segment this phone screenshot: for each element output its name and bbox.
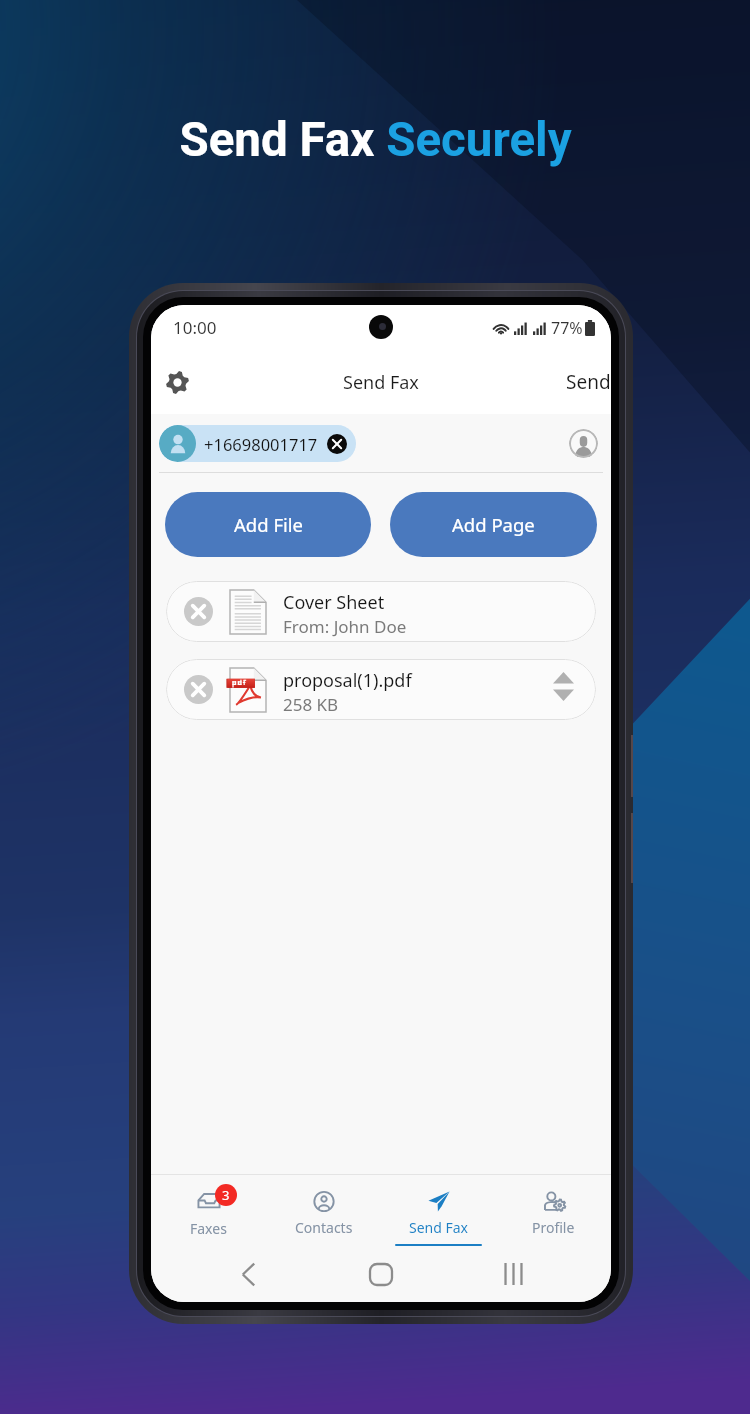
button[interactable]: Profile (496, 1175, 611, 1246)
staticText: 77% (551, 317, 583, 339)
button[interactable]: 3 (151, 1175, 266, 1246)
button[interactable]: Choose contact (569, 429, 598, 458)
button[interactable]: Cover Sheet (166, 581, 596, 642)
button[interactable]: Home (314, 1246, 447, 1302)
button[interactable]: Send (560, 359, 611, 405)
button[interactable]: Send Fax (381, 1175, 496, 1246)
staticText: 10:00 (173, 316, 217, 339)
button[interactable]: Add File (165, 492, 371, 557)
staticText: Cover Sheet (283, 590, 385, 615)
button[interactable]: Contacts (266, 1175, 381, 1246)
staticText: Profile (532, 1218, 575, 1237)
staticText: Faxes (190, 1219, 227, 1238)
staticText: Send Fax (409, 1218, 469, 1237)
staticText: +16698001717 (204, 433, 318, 455)
staticText: Add File (234, 512, 303, 537)
staticText: Send (566, 369, 611, 395)
button[interactable]: proposal(1).pdf (166, 659, 596, 720)
staticText: Contacts (295, 1218, 353, 1237)
staticText: 3 (222, 1186, 230, 1204)
button[interactable]: Settings (154, 359, 200, 405)
staticText: Add Page (452, 512, 535, 537)
staticText: Send Fax (343, 370, 419, 395)
button[interactable]: Add Page (390, 492, 597, 557)
staticText: Send Fax Securely (179, 112, 572, 168)
staticText: From: John Doe (283, 615, 407, 638)
staticText: proposal(1).pdf (283, 668, 412, 693)
button[interactable]: +16698001717 (159, 425, 356, 462)
button[interactable]: Back (182, 1246, 314, 1302)
button[interactable]: Recent apps (447, 1246, 580, 1302)
staticText: 258 KB (283, 693, 339, 716)
